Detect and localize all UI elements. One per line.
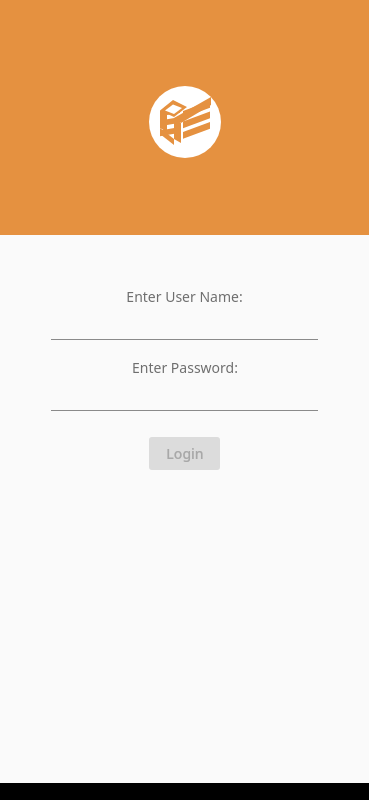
staticText: Enter Password: [132, 358, 238, 377]
staticText: Login [166, 444, 204, 463]
staticText: Enter User Name: [126, 287, 243, 306]
other: App logo [149, 86, 221, 158]
button[interactable]: Login [149, 437, 220, 470]
